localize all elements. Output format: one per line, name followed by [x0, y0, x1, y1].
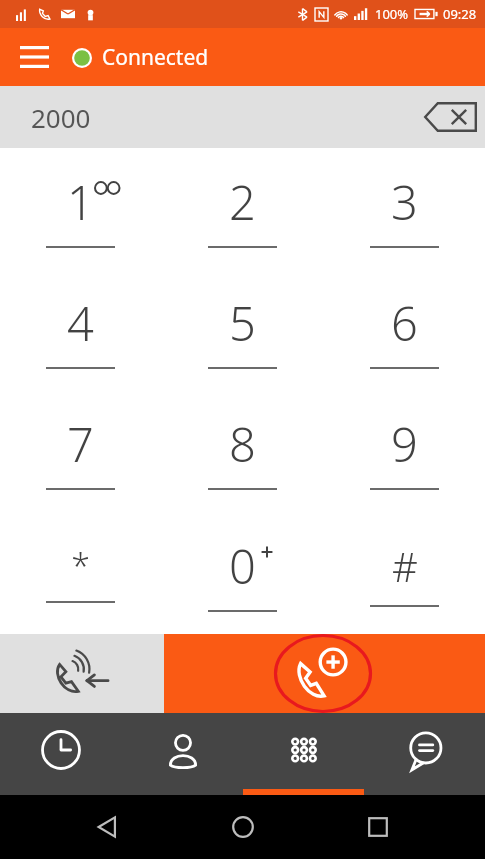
staticText: 3: [391, 170, 418, 234]
button[interactable]: 1: [0, 148, 161, 269]
staticText: 0: [229, 534, 256, 598]
staticText: 2000: [31, 100, 91, 135]
button[interactable]: Dialpad: [243, 713, 364, 795]
staticText: 7: [67, 412, 94, 476]
staticText: 8: [229, 412, 256, 476]
button[interactable]: #: [323, 512, 485, 634]
button[interactable]: Home: [215, 799, 271, 855]
staticText: 6: [391, 291, 418, 355]
button[interactable]: *: [0, 512, 161, 634]
staticText: *: [71, 543, 90, 589]
staticText: 9: [391, 412, 418, 476]
staticText: 09:28: [443, 5, 477, 23]
button[interactable]: Recent apps: [350, 799, 406, 855]
button[interactable]: Recent calls: [0, 713, 122, 795]
button[interactable]: Open navigation menu: [8, 31, 60, 83]
button[interactable]: 7: [0, 390, 161, 512]
button[interactable]: 0: [161, 512, 323, 634]
button[interactable]: 6: [323, 269, 485, 390]
staticText: 1: [67, 170, 94, 234]
button[interactable]: Add call: [164, 634, 485, 713]
button[interactable]: Messages: [364, 713, 485, 795]
button[interactable]: Incoming call transfer: [0, 634, 164, 713]
staticText: 2: [229, 170, 256, 234]
button[interactable]: 9: [323, 390, 485, 512]
staticText: Connected: [102, 43, 209, 72]
button[interactable]: 3: [323, 148, 485, 269]
button[interactable]: 2: [161, 148, 323, 269]
button[interactable]: 5: [161, 269, 323, 390]
button[interactable]: Back: [79, 799, 135, 855]
staticText: 5: [229, 291, 256, 355]
staticText: #: [392, 539, 418, 593]
button[interactable]: Backspace: [423, 90, 477, 144]
button[interactable]: Contacts: [122, 713, 243, 795]
button[interactable]: 8: [161, 390, 323, 512]
staticText: 4: [67, 291, 94, 355]
staticText: 100%: [375, 5, 409, 23]
button[interactable]: 4: [0, 269, 161, 390]
